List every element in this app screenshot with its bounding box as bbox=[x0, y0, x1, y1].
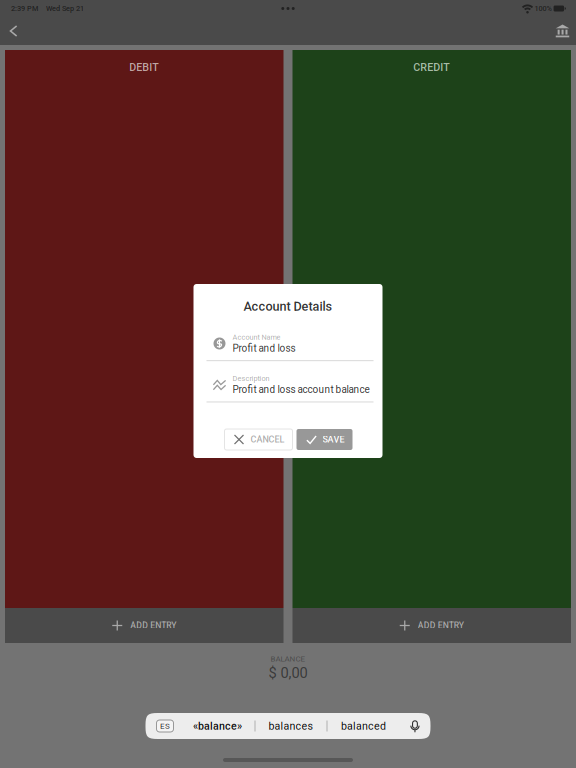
staticText: DEBIT bbox=[129, 61, 159, 73]
staticText: ADD ENTRY bbox=[130, 620, 176, 631]
button[interactable]: CANCEL bbox=[224, 429, 292, 450]
button[interactable]: ADD ENTRY bbox=[292, 608, 571, 643]
staticText: Profit and loss bbox=[232, 342, 295, 354]
staticText: balances bbox=[268, 720, 313, 732]
staticText: 100% bbox=[534, 4, 551, 13]
staticText: Account Name bbox=[232, 333, 280, 341]
staticText: balanced bbox=[341, 720, 386, 732]
staticText: Account Details bbox=[243, 299, 332, 314]
button[interactable]: balances bbox=[255, 713, 326, 739]
button[interactable]: Language bbox=[145, 720, 180, 732]
staticText: «balance» bbox=[193, 720, 242, 732]
button[interactable]: Back bbox=[2, 17, 26, 45]
staticText: Description bbox=[232, 374, 269, 383]
staticText: SAVE bbox=[322, 434, 344, 445]
staticText: CANCEL bbox=[250, 434, 284, 445]
staticText: BALANCE bbox=[270, 654, 305, 663]
staticText: Profit and loss account balance bbox=[232, 384, 369, 395]
staticText: CREDIT bbox=[413, 61, 450, 73]
staticText: Wed Sep 21 bbox=[46, 4, 84, 13]
button[interactable]: DEBIT bbox=[5, 50, 283, 608]
button[interactable]: SAVE bbox=[296, 429, 352, 450]
staticText: ES bbox=[160, 721, 170, 731]
button[interactable]: ADD ENTRY bbox=[5, 608, 283, 643]
staticText: 2:39 PM bbox=[11, 4, 38, 13]
staticText: $ 0,00 bbox=[268, 664, 307, 682]
button[interactable]: «balance» bbox=[180, 713, 254, 739]
button[interactable]: balanced bbox=[327, 713, 399, 739]
staticText: ADD ENTRY bbox=[418, 620, 464, 631]
button[interactable]: Accounts bbox=[549, 17, 576, 45]
button[interactable]: CREDIT bbox=[292, 50, 571, 608]
button[interactable]: Dictate bbox=[399, 713, 430, 739]
